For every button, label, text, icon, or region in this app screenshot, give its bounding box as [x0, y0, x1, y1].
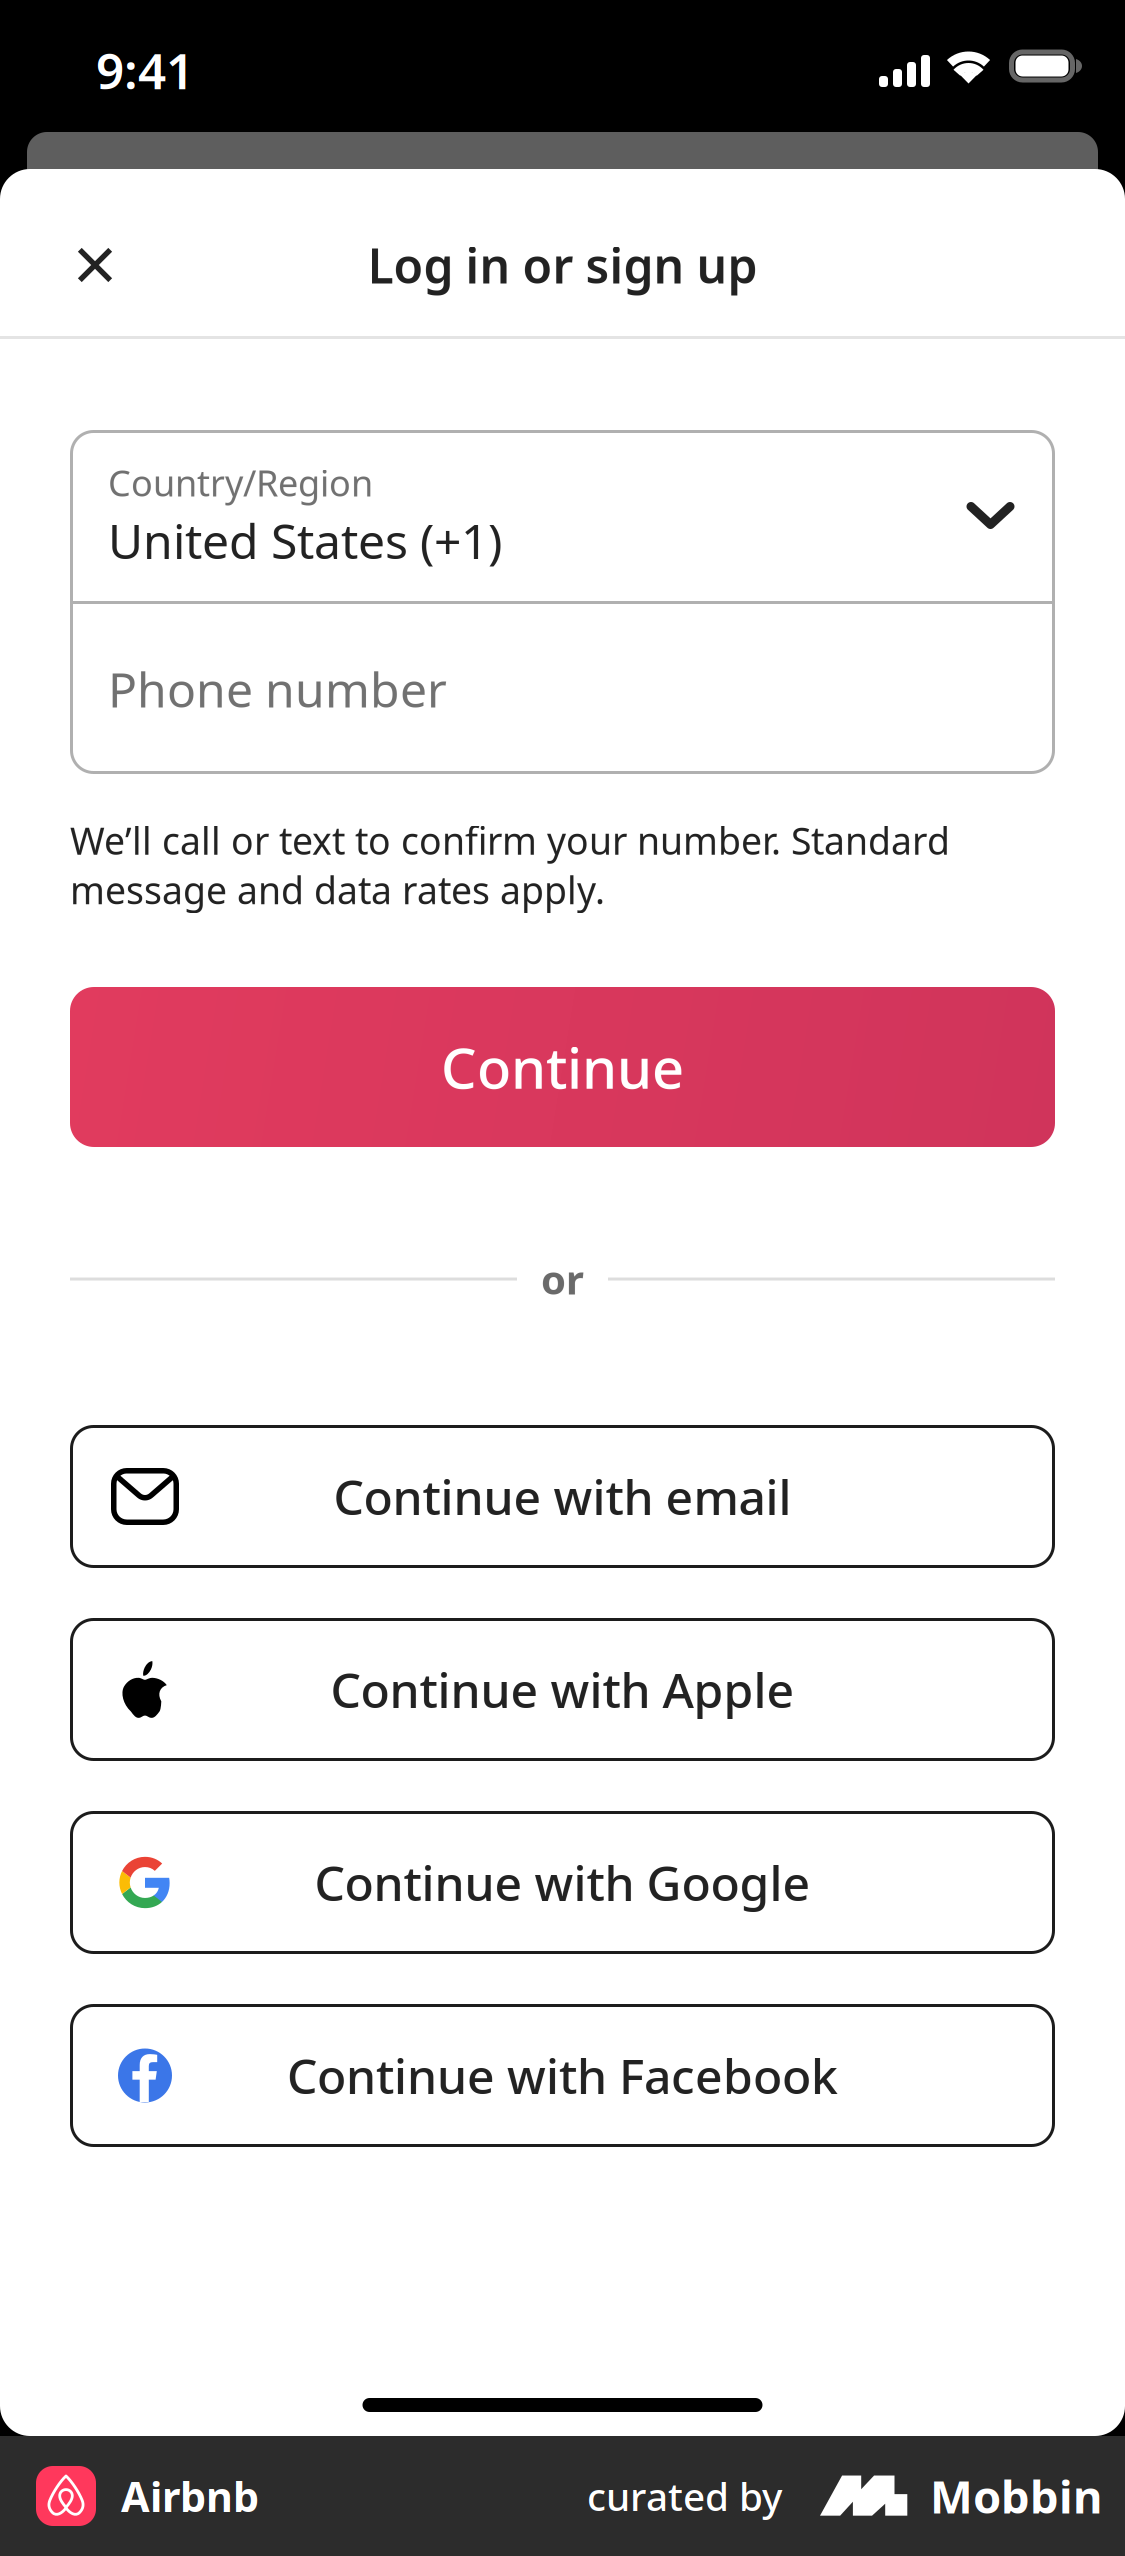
staticText: Continue with email [333, 1465, 791, 1528]
staticText: United States (+1) [108, 508, 502, 572]
button[interactable]: Continue with Facebook [70, 2004, 1055, 2147]
staticText: Mobbin [930, 2466, 1102, 2526]
button[interactable]: Continue with Google [70, 1811, 1055, 1954]
staticText: Continue [441, 1030, 684, 1104]
staticText: Log in or sign up [367, 233, 757, 297]
staticText: curated by [587, 2470, 782, 2522]
staticText: 9:41 [96, 37, 194, 103]
staticText: Continue with Google [314, 1851, 810, 1914]
button[interactable]: Country/Region [70, 430, 1055, 601]
button[interactable]: Continue with Apple [70, 1618, 1055, 1761]
staticText: We’ll call or text to confirm your numbe… [70, 815, 950, 915]
staticText: Continue with Facebook [287, 2044, 838, 2107]
staticText: Country/Region [108, 459, 373, 506]
staticText: Airbnb [121, 2469, 259, 2523]
staticText: Phone number [108, 657, 447, 721]
button[interactable]: Continue with email [70, 1425, 1055, 1568]
staticText: Continue with Apple [330, 1658, 794, 1721]
staticText: or [541, 1252, 584, 1305]
button[interactable]: Continue [70, 987, 1055, 1147]
button[interactable]: Close [54, 224, 136, 306]
